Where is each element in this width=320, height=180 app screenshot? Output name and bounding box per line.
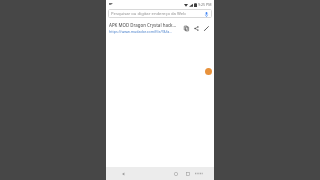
button[interactable]: Pesquisar ou digitar endereço da Web	[108, 9, 212, 18]
staticText: https://www.mudador.com/file/?&fa...	[109, 29, 173, 34]
staticText: 9:25 PM	[198, 2, 212, 7]
staticText: Pesquisar ou digitar endereço da Web	[111, 11, 186, 17]
button[interactable]: Edit	[201, 23, 211, 33]
button[interactable]: Voice search	[202, 10, 210, 18]
staticText: APK MOD Dragon Crystal hack...	[109, 22, 177, 28]
button[interactable]: Share	[191, 23, 201, 33]
button[interactable]: Recents	[183, 167, 193, 180]
button[interactable]: APK MOD Dragon Crystal hack...	[106, 21, 214, 35]
button[interactable]: Back	[116, 167, 130, 180]
button[interactable]: Home	[171, 167, 181, 180]
button[interactable]: Copy	[181, 23, 191, 33]
